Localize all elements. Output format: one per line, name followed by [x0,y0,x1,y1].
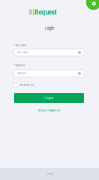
button[interactable]: Settings [86,0,99,10]
staticText: Password [17,72,26,75]
staticText: User Name [17,51,28,54]
button[interactable]: Forgot Password? [14,108,84,113]
staticText: CIMS [46,173,52,175]
staticText: User Name [15,44,26,47]
staticText: Request [34,9,56,16]
staticText: * [14,64,15,67]
staticText: Login [44,96,53,100]
staticText: Forgot Password? [37,109,60,112]
staticText: Remember Me [20,84,34,86]
button[interactable]: Login [14,93,84,103]
staticText: S| [28,9,34,16]
staticText: Login [45,26,54,31]
staticText: Password [15,64,24,67]
button[interactable]: Remember Me [13,83,83,87]
staticText: * [14,44,15,47]
